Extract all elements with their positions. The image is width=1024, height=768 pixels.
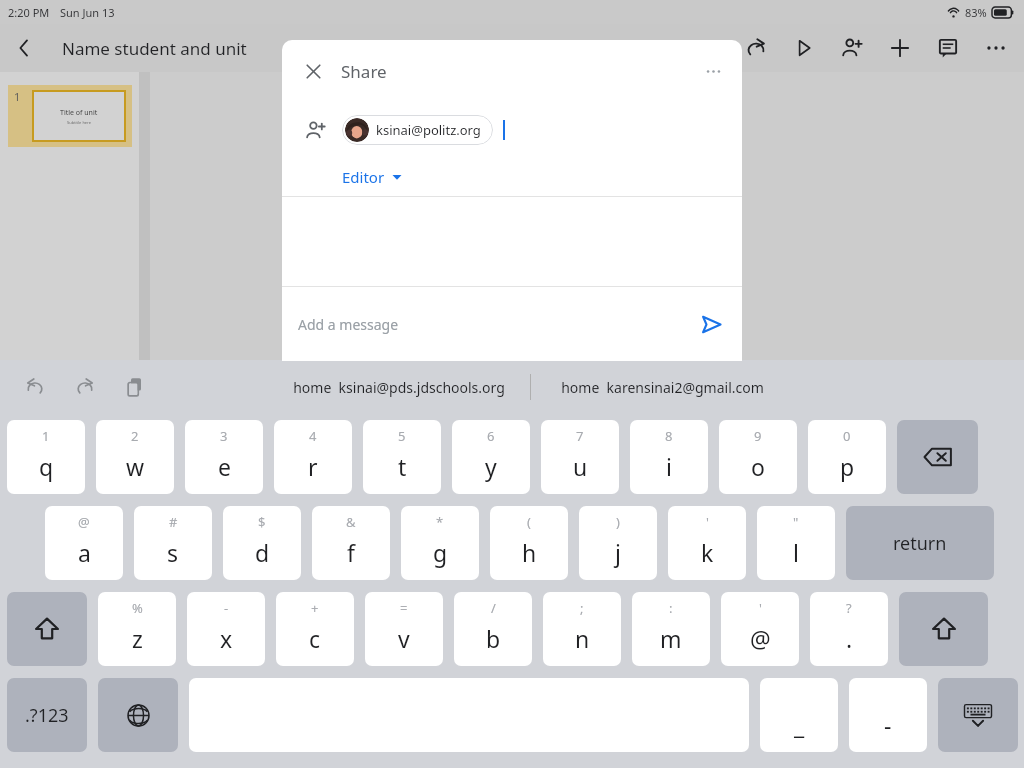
staticText: Share bbox=[341, 60, 387, 83]
button[interactable]: Change language bbox=[98, 678, 178, 752]
staticText: g bbox=[433, 537, 448, 568]
button[interactable]: # bbox=[134, 506, 212, 580]
button[interactable]: : bbox=[632, 592, 710, 666]
button[interactable]: Redo bbox=[66, 368, 104, 406]
button[interactable]: & bbox=[312, 506, 390, 580]
button[interactable]: Send bbox=[694, 307, 728, 341]
button[interactable]: ' bbox=[668, 506, 746, 580]
staticText: j bbox=[615, 537, 621, 568]
button[interactable]: ) bbox=[579, 506, 657, 580]
button[interactable]: % bbox=[98, 592, 176, 666]
button[interactable]: Back bbox=[0, 24, 48, 72]
button[interactable]: Shift bbox=[899, 592, 988, 666]
staticText: . bbox=[846, 623, 853, 654]
staticText: Add a message bbox=[298, 315, 399, 334]
button[interactable]: Backspace bbox=[897, 420, 978, 494]
staticText: w bbox=[126, 451, 145, 482]
staticText: a bbox=[78, 537, 91, 568]
button[interactable]: 7 bbox=[541, 420, 619, 494]
staticText: r bbox=[308, 451, 318, 482]
staticText: return bbox=[893, 531, 947, 556]
staticText: y bbox=[485, 451, 497, 482]
button[interactable]: Add a message bbox=[282, 287, 742, 361]
button[interactable]: + bbox=[276, 592, 354, 666]
staticText: i bbox=[666, 451, 672, 482]
button[interactable]: Comments bbox=[924, 24, 972, 72]
button[interactable]: Add people bbox=[298, 113, 332, 147]
staticText: + bbox=[311, 599, 319, 617]
button[interactable]: Hide keyboard bbox=[938, 678, 1018, 752]
button[interactable]: ksinai@politz.org bbox=[342, 115, 493, 145]
staticText: - bbox=[224, 599, 229, 617]
button[interactable]: return bbox=[846, 506, 994, 580]
button[interactable]: home karensinai2@gmail.com bbox=[531, 378, 793, 397]
button[interactable]: = bbox=[365, 592, 443, 666]
staticText: 83% bbox=[965, 5, 987, 20]
button[interactable]: home ksinai@pds.jdschools.org bbox=[268, 378, 530, 397]
staticText: m bbox=[660, 623, 682, 654]
button[interactable]: Paste bbox=[116, 368, 154, 406]
button[interactable]: Editor bbox=[342, 158, 402, 196]
staticText: h bbox=[522, 537, 537, 568]
button[interactable]: 2 bbox=[96, 420, 174, 494]
button[interactable]: More bbox=[697, 55, 729, 87]
staticText: k bbox=[701, 537, 714, 568]
button[interactable]: ; bbox=[543, 592, 621, 666]
button[interactable]: 9 bbox=[719, 420, 797, 494]
staticText: home karensinai2@gmail.com bbox=[561, 378, 764, 397]
button[interactable]: * bbox=[401, 506, 479, 580]
button[interactable]: - bbox=[849, 678, 927, 752]
staticText: 8 bbox=[665, 427, 673, 445]
button[interactable]: 3 bbox=[185, 420, 263, 494]
button[interactable]: Redo bbox=[732, 24, 780, 72]
button[interactable]: 0 bbox=[808, 420, 886, 494]
button[interactable]: Undo bbox=[16, 368, 54, 406]
staticText: Sun Jun 13 bbox=[60, 5, 115, 20]
staticText: @ bbox=[750, 623, 771, 654]
staticText: c bbox=[309, 623, 321, 654]
button[interactable]: Add slide bbox=[876, 24, 924, 72]
staticText: ? bbox=[846, 599, 852, 617]
staticText: / bbox=[491, 599, 496, 617]
button[interactable]: _ bbox=[760, 678, 838, 752]
button[interactable]: 1 bbox=[7, 420, 85, 494]
staticText: Subtitle here bbox=[67, 120, 91, 125]
staticText: * bbox=[436, 513, 444, 531]
button[interactable]: 5 bbox=[363, 420, 441, 494]
button[interactable]: Name student and unit bbox=[62, 37, 247, 60]
button[interactable]: 4 bbox=[274, 420, 352, 494]
staticText: s bbox=[167, 537, 179, 568]
button[interactable]: ? bbox=[810, 592, 888, 666]
button[interactable]: - bbox=[187, 592, 265, 666]
button[interactable]: Shift bbox=[7, 592, 87, 666]
staticText: % bbox=[132, 599, 143, 617]
button[interactable]: 8 bbox=[630, 420, 708, 494]
button[interactable]: @ bbox=[45, 506, 123, 580]
staticText: 4 bbox=[309, 427, 317, 445]
staticText: 1 bbox=[14, 89, 21, 104]
button[interactable]: 6 bbox=[452, 420, 530, 494]
staticText: " bbox=[793, 513, 799, 531]
button[interactable]: " bbox=[757, 506, 835, 580]
button[interactable]: More options bbox=[972, 24, 1020, 72]
staticText: 2:20 PM bbox=[8, 5, 50, 20]
staticText: l bbox=[793, 537, 799, 568]
staticText: x bbox=[220, 623, 233, 654]
staticText: z bbox=[132, 623, 143, 654]
button[interactable]: / bbox=[454, 592, 532, 666]
staticText: ' bbox=[706, 513, 709, 531]
button[interactable]: ( bbox=[490, 506, 568, 580]
button[interactable]: Present bbox=[780, 24, 828, 72]
button[interactable]: 1 bbox=[8, 85, 132, 147]
button[interactable]: $ bbox=[223, 506, 301, 580]
staticText: - bbox=[884, 709, 892, 740]
button[interactable]: ' bbox=[721, 592, 799, 666]
button[interactable]: Close bbox=[296, 54, 330, 88]
staticText: b bbox=[486, 623, 501, 654]
button[interactable]: Share bbox=[828, 24, 876, 72]
button[interactable]: .?123 bbox=[7, 678, 87, 752]
staticText: : bbox=[669, 599, 673, 617]
staticText: t bbox=[398, 451, 407, 482]
staticText: 2 bbox=[131, 427, 139, 445]
